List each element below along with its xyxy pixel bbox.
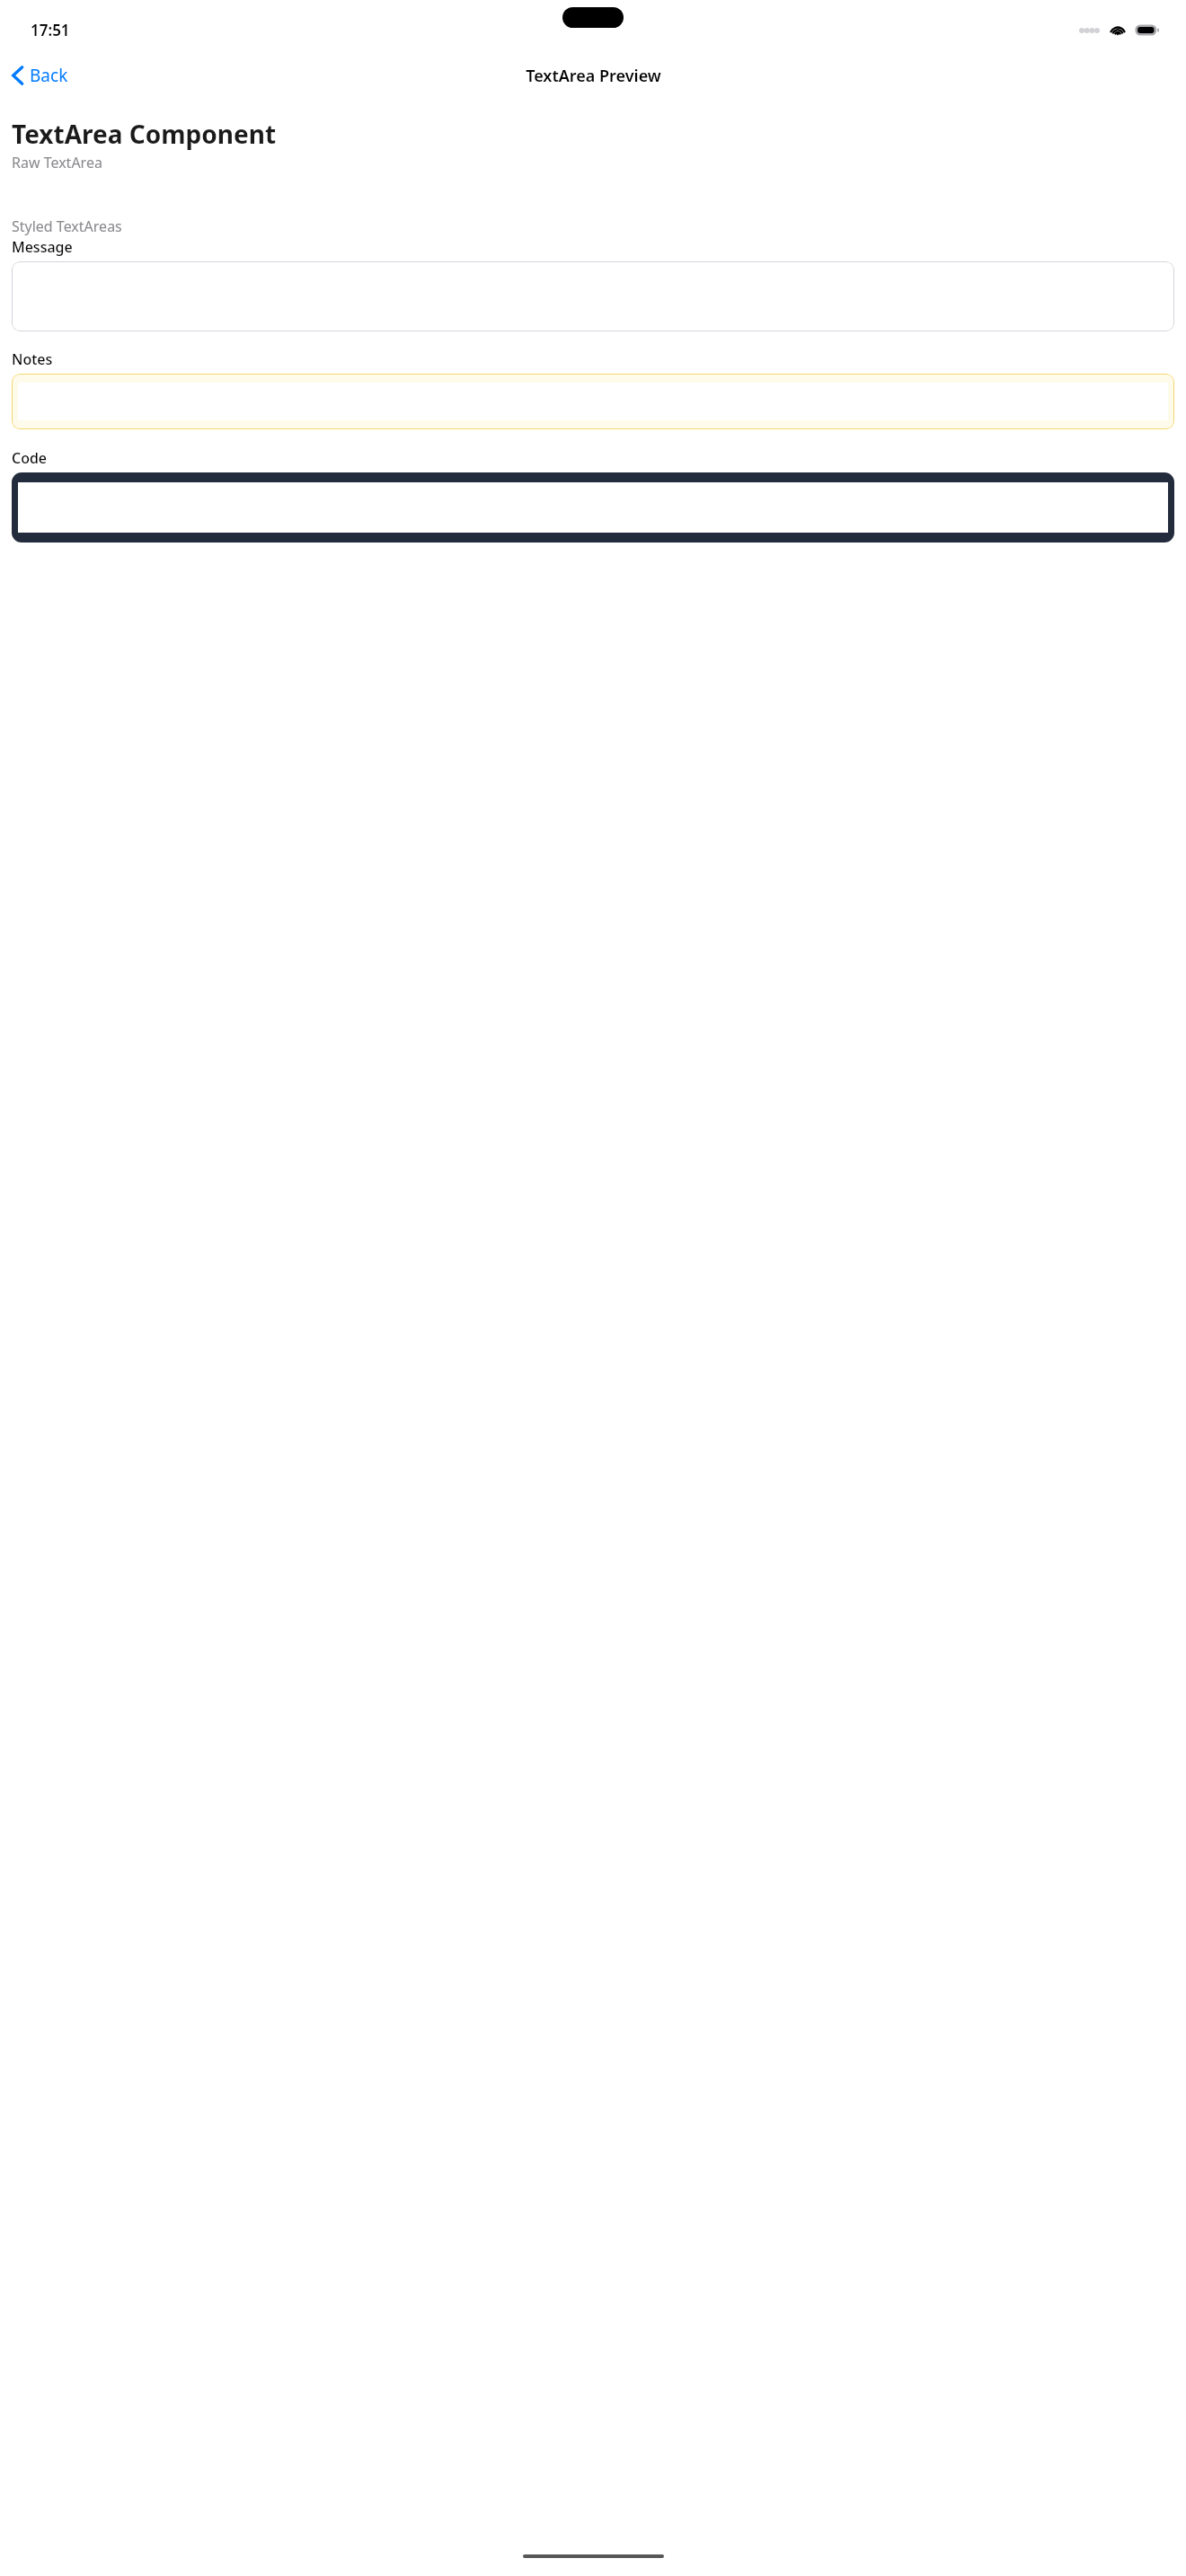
staticText: Back [30,64,68,87]
staticText: Code [12,448,48,468]
staticText: Notes [12,349,53,369]
staticText: Raw TextArea [12,153,102,172]
staticText: TextArea Component [12,117,277,151]
staticText: Styled TextAreas [12,216,122,236]
staticText: TextArea Preview [526,65,661,87]
button[interactable]: Back [5,59,79,92]
staticText: 17:51 [31,20,70,40]
button[interactable]: Code text area [12,472,1174,543]
button[interactable]: Message text area [12,261,1174,331]
staticText: Message [12,237,73,257]
button[interactable]: Notes text area [12,374,1174,429]
